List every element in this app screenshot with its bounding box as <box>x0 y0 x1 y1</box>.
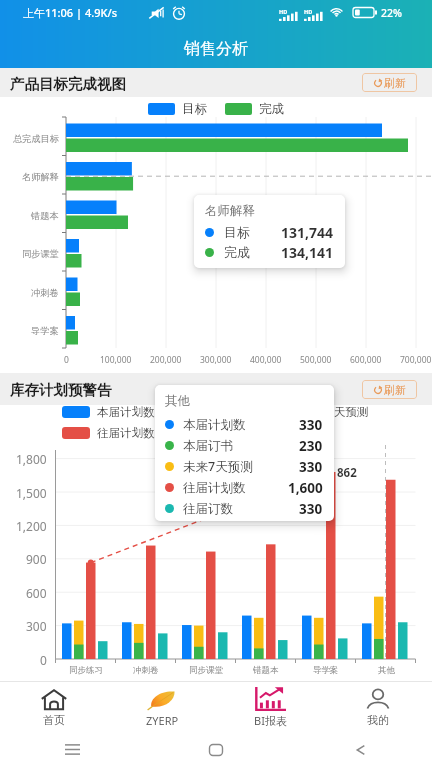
staticText: 本届计划数 <box>97 405 155 419</box>
staticText: 错题本 <box>31 210 59 222</box>
staticText: 700,000 <box>400 354 432 366</box>
staticText: 我的 <box>367 713 389 727</box>
staticText: 目标 <box>182 101 207 117</box>
staticText: 300,000 <box>200 354 232 366</box>
staticText: 上午11:06 | 4.9K/s <box>23 5 118 20</box>
staticText: 330 <box>299 416 323 434</box>
staticText: 刷新 <box>384 76 406 90</box>
staticText: 1,200 <box>16 518 47 534</box>
staticText: 同步练习 <box>69 665 103 676</box>
staticText: 862 <box>337 465 357 481</box>
button[interactable]: BI报表 <box>216 682 324 731</box>
staticText: BI报表 <box>254 713 287 728</box>
staticText: 本届计划数 <box>183 417 246 433</box>
staticText: 500,000 <box>300 354 332 366</box>
staticText: 名师解释 <box>22 171 59 183</box>
staticText: 首页 <box>43 713 65 727</box>
staticText: 名师解释 <box>205 203 255 219</box>
staticText: 400,000 <box>250 354 282 366</box>
staticText: 完成 <box>224 244 250 260</box>
staticText: HD <box>304 8 313 15</box>
staticText: 0 <box>64 354 69 366</box>
staticText: 同步课堂 <box>189 665 223 676</box>
staticText: 其他 <box>165 393 190 409</box>
staticText: 库存计划预警告 <box>10 381 112 399</box>
staticText: 往届计划数 <box>97 426 155 440</box>
staticText: 导学案 <box>313 665 339 676</box>
staticText: 未来7天预测 <box>183 458 253 475</box>
button[interactable]: Back <box>288 731 432 768</box>
staticText: ZYERP <box>146 713 179 728</box>
staticText: 100,000 <box>100 354 132 366</box>
staticText: 往届计划数 <box>183 480 246 496</box>
staticText: 230 <box>299 437 323 455</box>
staticText: 其他 <box>378 665 395 676</box>
other: Back <box>355 743 366 757</box>
staticText: 总完成目标 <box>13 133 59 145</box>
button[interactable]: 我的 <box>324 682 432 731</box>
staticText: 330 <box>299 458 323 476</box>
staticText: 22% <box>381 6 402 20</box>
staticText: HD <box>279 8 288 15</box>
staticText: 900 <box>26 551 47 567</box>
staticText: 300 <box>26 618 47 634</box>
staticText: 330 <box>299 500 323 518</box>
staticText: 本届订书 <box>183 438 233 454</box>
button[interactable]: 刷新 <box>362 380 417 399</box>
other: Recents <box>65 744 80 755</box>
staticText: 天预测 <box>334 405 369 419</box>
staticText: 1,800 <box>16 451 47 467</box>
staticText: 冲刺卷 <box>133 665 159 676</box>
button[interactable]: Home <box>144 731 288 768</box>
button[interactable]: Recents <box>0 731 144 768</box>
staticText: 销售分析 <box>184 39 248 59</box>
button[interactable]: 刷新 <box>362 73 417 92</box>
staticText: 200,000 <box>150 354 182 366</box>
staticText: 0 <box>40 652 47 668</box>
staticText: 131,744 <box>281 223 334 242</box>
staticText: 600,000 <box>350 354 382 366</box>
staticText: 134,141 <box>281 243 334 262</box>
staticText: 产品目标完成视图 <box>10 75 126 93</box>
staticText: 错题本 <box>253 665 279 676</box>
other: Home <box>209 744 223 756</box>
button[interactable]: ZYERP <box>108 682 216 731</box>
staticText: 刷新 <box>384 383 406 397</box>
staticText: 600 <box>26 585 47 601</box>
staticText: 往届订数 <box>183 501 233 517</box>
staticText: 完成 <box>259 101 284 117</box>
staticText: 1,500 <box>16 485 47 501</box>
staticText: 导学案 <box>31 325 59 337</box>
staticText: 冲刺卷 <box>31 287 59 299</box>
staticText: 同步课堂 <box>22 248 59 260</box>
button[interactable]: 首页 <box>0 682 108 731</box>
staticText: 目标 <box>224 224 250 240</box>
staticText: 1,600 <box>288 479 323 497</box>
